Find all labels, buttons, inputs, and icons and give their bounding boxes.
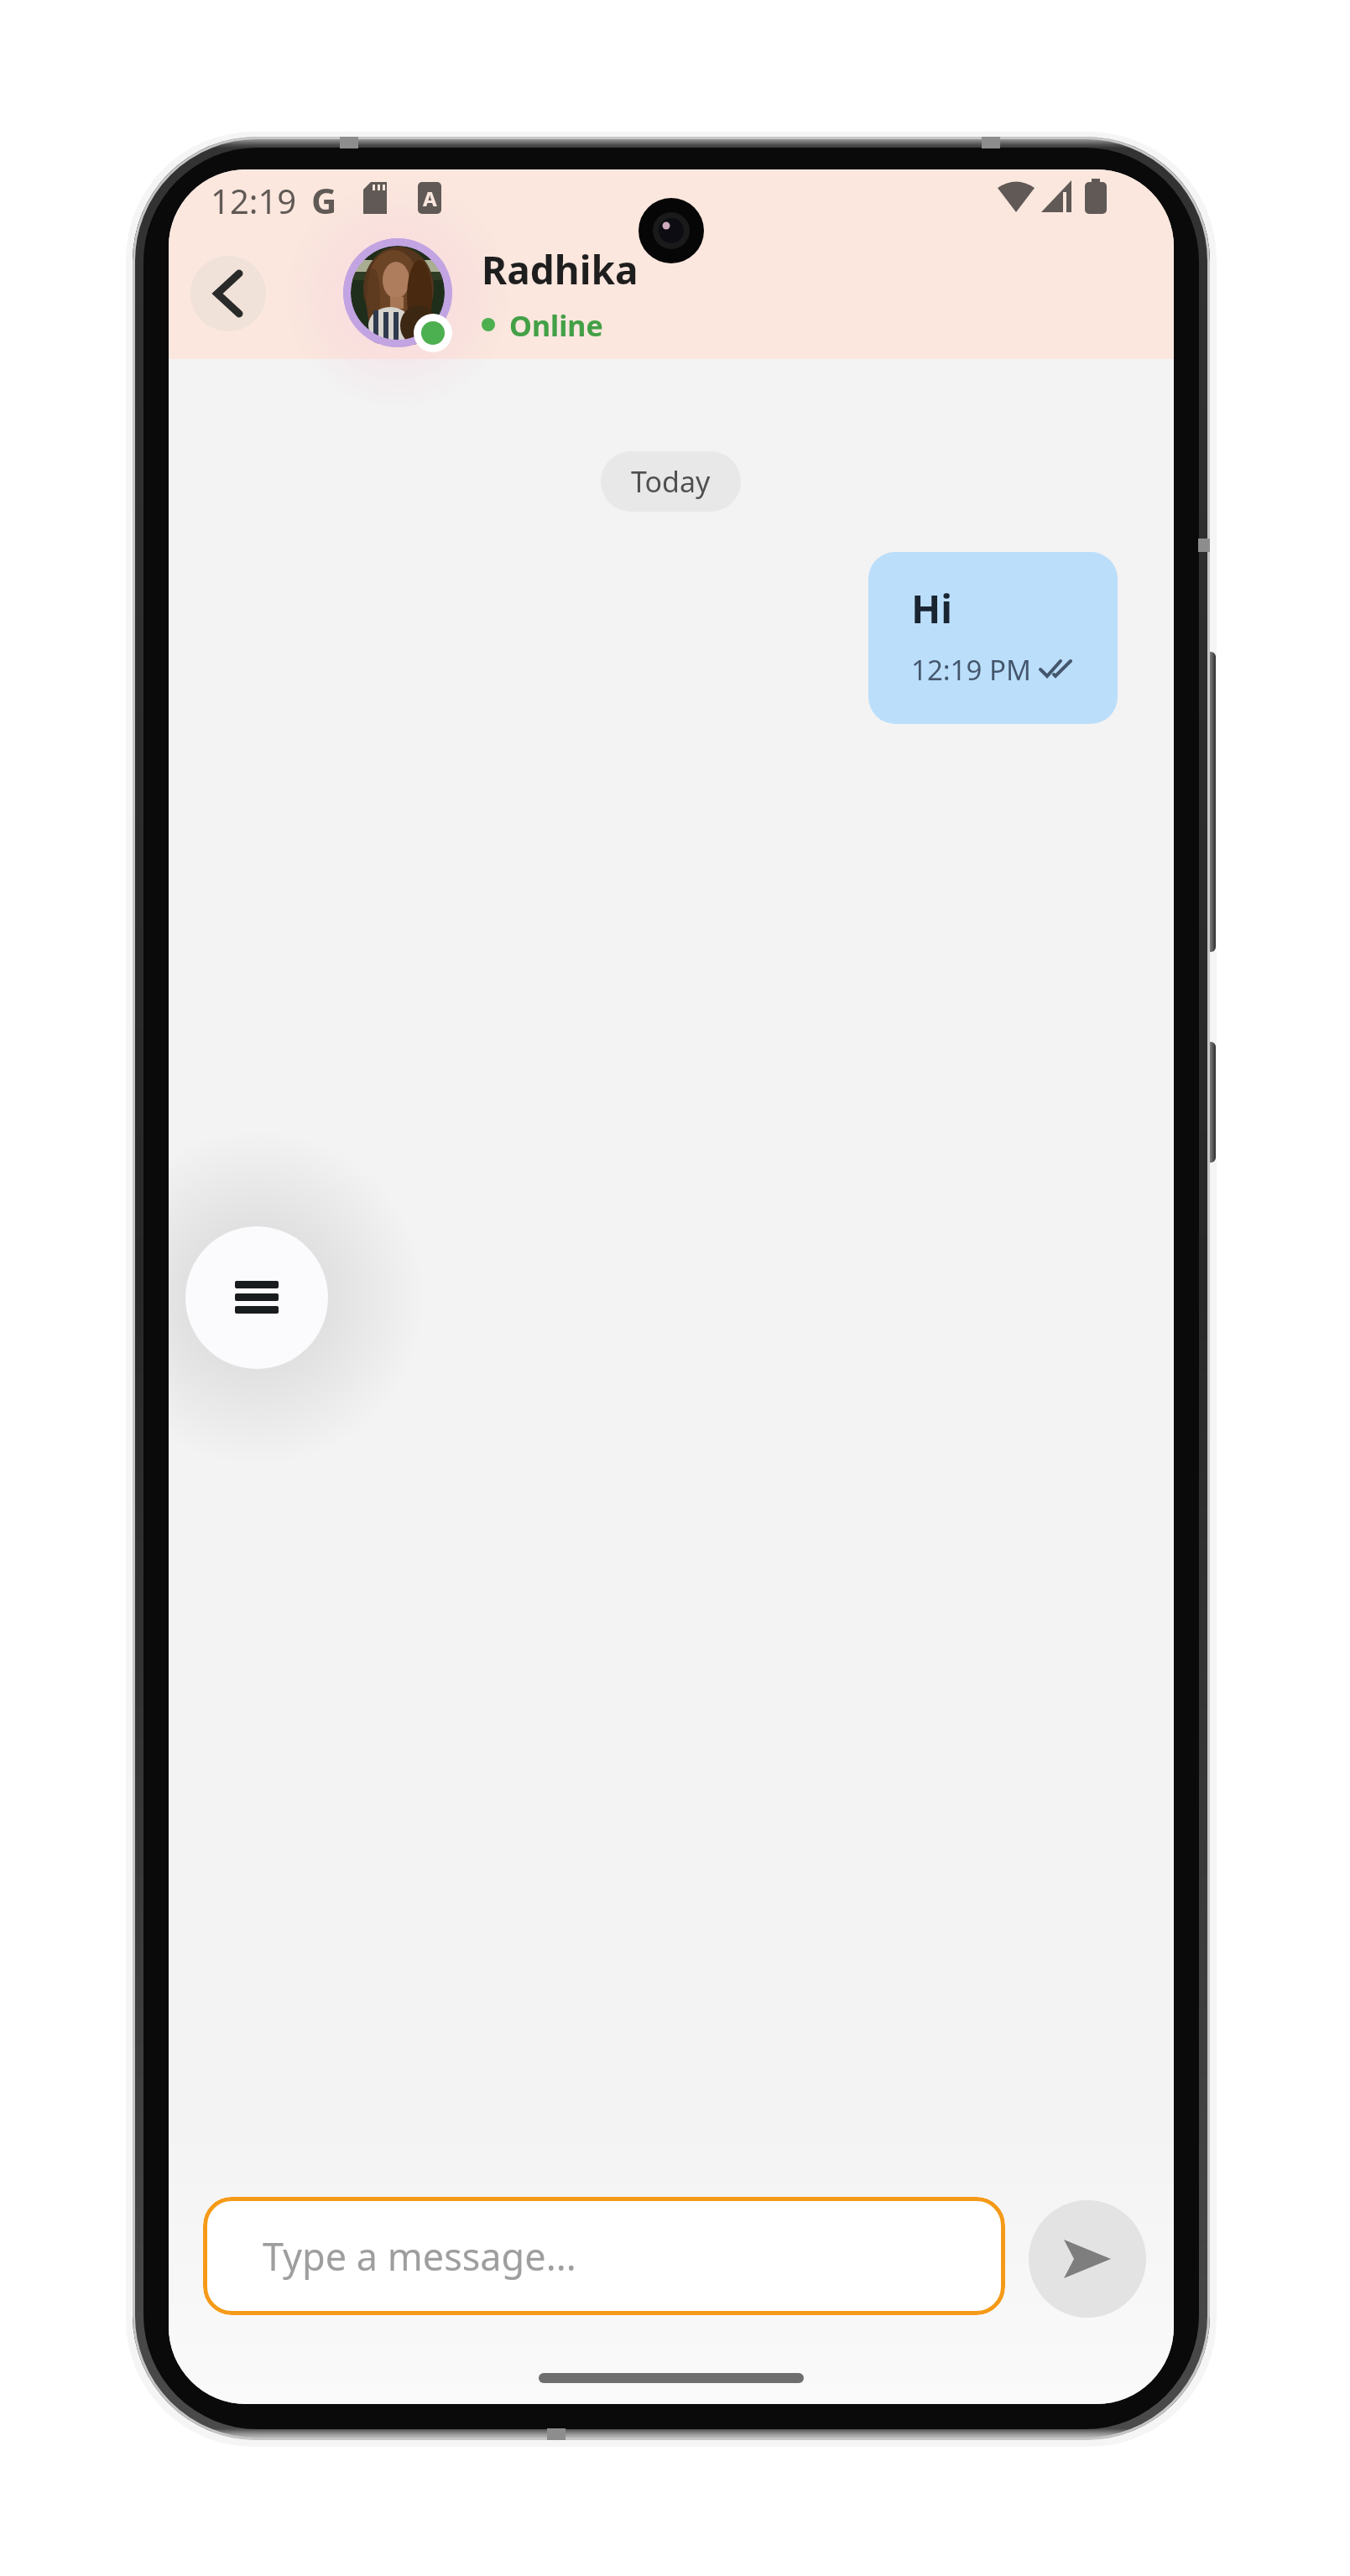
staticText: 12:19 <box>211 178 297 223</box>
staticText: Type a message... <box>263 2230 576 2282</box>
button[interactable] <box>185 1226 328 1369</box>
button[interactable] <box>1029 2200 1146 2318</box>
staticText: Today <box>631 462 711 501</box>
staticText: G <box>311 176 337 224</box>
button[interactable] <box>190 256 266 331</box>
staticText: Radhika <box>482 243 639 296</box>
staticText: Hi <box>911 582 952 635</box>
staticText: 12:19 PM <box>911 651 1031 689</box>
button[interactable]: Type a message... <box>203 2197 1005 2315</box>
staticText: Online <box>509 306 603 345</box>
staticText: A <box>423 185 437 212</box>
